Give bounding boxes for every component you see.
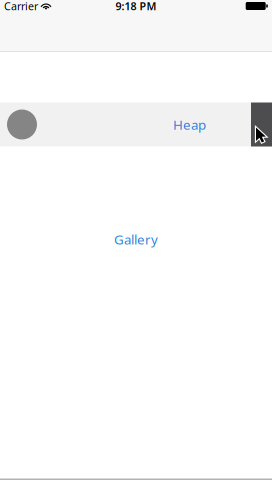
button[interactable]: Gallery — [114, 230, 158, 248]
button[interactable]: Heap — [0, 102, 251, 146]
staticText: Gallery — [114, 230, 158, 248]
staticText: Carrier — [4, 0, 38, 13]
button[interactable]: Delete — [251, 102, 272, 146]
staticText: Heap — [173, 116, 206, 133]
staticText: 9:18 PM — [115, 0, 156, 13]
